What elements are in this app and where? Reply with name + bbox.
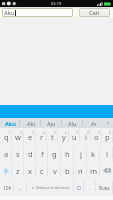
staticText: j — [80, 149, 82, 159]
staticText: y — [62, 132, 66, 142]
staticText: i — [85, 132, 87, 142]
staticText: Cari — [89, 9, 100, 16]
staticText: x — [28, 166, 32, 176]
button[interactable]: More suggestions — [104, 118, 113, 128]
button[interactable]: Ar — [83, 118, 104, 128]
button[interactable]: 8 — [80, 128, 91, 145]
staticText: t — [51, 132, 54, 142]
staticText: > — [107, 120, 110, 127]
staticText: 9 — [98, 130, 101, 135]
staticText: f — [41, 149, 44, 159]
button[interactable]: h — [61, 145, 74, 162]
staticText: g — [52, 149, 57, 159]
staticText: 4 — [43, 130, 46, 135]
button[interactable]: s — [12, 145, 24, 162]
button[interactable]: , — [14, 179, 27, 196]
button[interactable]: Alu — [62, 118, 83, 128]
staticText: q — [4, 132, 9, 142]
staticText: Bahasa Indonesia — [36, 185, 70, 190]
staticText: b — [65, 166, 70, 176]
staticText: . — [89, 184, 91, 192]
staticText: Aju — [47, 120, 56, 127]
staticText: h — [65, 149, 70, 159]
button[interactable]: Emoji — [74, 179, 84, 196]
staticText: Aku — [5, 120, 16, 127]
staticText: z — [16, 166, 20, 176]
staticText: d — [28, 149, 33, 159]
button[interactable]: 4 — [36, 128, 47, 145]
staticText: 1 — [8, 130, 11, 135]
button[interactable]: Aku — [2, 8, 73, 17]
staticText: 5 — [54, 130, 57, 135]
button[interactable]: f — [36, 145, 48, 162]
staticText: a — [4, 149, 9, 159]
button[interactable]: Backspace — [100, 162, 113, 179]
staticText: n — [78, 166, 83, 176]
button[interactable]: Shift — [0, 162, 12, 179]
staticText: p — [105, 132, 110, 142]
button[interactable]: j — [74, 145, 87, 162]
staticText: , — [20, 184, 22, 192]
staticText: Aku — [4, 9, 15, 17]
staticText: o — [94, 132, 99, 142]
staticText: 6 — [65, 130, 68, 135]
button[interactable]: x — [24, 162, 36, 179]
button[interactable]: g — [48, 145, 61, 162]
staticText: 03:19 — [51, 1, 62, 6]
button[interactable]: Aku — [0, 118, 20, 128]
button[interactable]: 5 — [47, 128, 58, 145]
staticText: e — [28, 132, 33, 142]
staticText: k — [91, 149, 96, 159]
button[interactable]: 0 — [102, 128, 113, 145]
button[interactable]: Space — [27, 179, 74, 196]
button[interactable]: 7 — [69, 128, 80, 145]
button[interactable]: Aju — [41, 118, 62, 128]
staticText: u — [72, 132, 77, 142]
button[interactable]: 6 — [58, 128, 69, 145]
staticText: w — [15, 132, 21, 142]
staticText: Ar — [91, 120, 97, 127]
button[interactable]: d — [24, 145, 36, 162]
staticText: l — [106, 149, 108, 159]
button[interactable]: v — [48, 162, 61, 179]
button[interactable]: Cari — [79, 8, 110, 17]
staticText: Alu — [68, 120, 77, 127]
button[interactable]: a — [0, 145, 12, 162]
staticText: Aki — [27, 120, 35, 127]
staticText: 0 — [109, 130, 112, 135]
button[interactable]: n — [74, 162, 87, 179]
button[interactable]: . — [84, 179, 96, 196]
button[interactable]: b — [61, 162, 74, 179]
staticText: m — [90, 166, 98, 176]
button[interactable]: 2 — [12, 128, 24, 145]
button[interactable]: Aki — [20, 118, 41, 128]
staticText: 12# — [3, 185, 12, 191]
staticText: Buka — [99, 185, 110, 191]
button[interactable]: z — [12, 162, 24, 179]
button[interactable]: 12# — [0, 179, 14, 196]
staticText: c — [40, 166, 44, 176]
staticText: 2 — [20, 130, 23, 135]
staticText: s — [16, 149, 20, 159]
button[interactable]: 9 — [91, 128, 102, 145]
staticText: 3 — [32, 130, 35, 135]
staticText: v — [53, 166, 57, 176]
button[interactable]: Buka — [96, 179, 113, 196]
button[interactable]: 1 — [0, 128, 12, 145]
button[interactable]: k — [87, 145, 100, 162]
button[interactable]: c — [36, 162, 48, 179]
staticText: r — [40, 132, 44, 142]
staticText: 8 — [87, 130, 90, 135]
staticText: 7 — [76, 130, 79, 135]
button[interactable]: l — [100, 145, 113, 162]
button[interactable]: m — [87, 162, 100, 179]
button[interactable]: 3 — [24, 128, 36, 145]
